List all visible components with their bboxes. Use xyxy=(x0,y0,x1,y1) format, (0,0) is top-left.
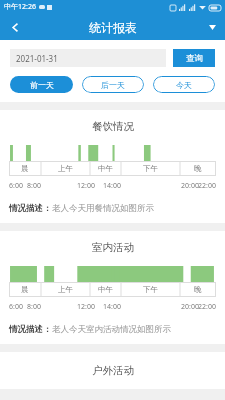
staticText: 22:00 xyxy=(198,181,216,191)
staticText: 6:00 xyxy=(9,302,23,312)
staticText: 20:00 xyxy=(181,302,199,312)
staticText: 中午 xyxy=(98,285,113,294)
staticText: 14:00 xyxy=(103,302,121,312)
staticText: 今天 xyxy=(176,80,192,90)
staticText: 晨 xyxy=(21,164,29,173)
button[interactable]: 查询 xyxy=(173,49,215,67)
button[interactable]: 返回 xyxy=(0,14,30,40)
staticText: 上午 xyxy=(58,164,73,173)
staticText: 老人今天用餐情况如图所示 xyxy=(52,203,154,214)
button[interactable]: 更多选项 xyxy=(199,14,225,40)
staticText: 14:00 xyxy=(103,181,121,191)
staticText: 查询 xyxy=(186,53,203,64)
staticText: 情况描述： xyxy=(9,324,52,335)
staticText: 8:00 xyxy=(27,302,41,312)
staticText: 下午 xyxy=(143,285,158,294)
staticText: 上午 xyxy=(58,285,73,294)
staticText: 室内活动 xyxy=(92,241,134,254)
staticText: 晨 xyxy=(21,285,29,294)
button[interactable]: 户外活动 xyxy=(0,352,225,389)
staticText: 老人今天室内活动情况如图所示 xyxy=(52,324,171,335)
staticText: 12:00 xyxy=(77,302,95,312)
staticText: 8:00 xyxy=(27,181,41,191)
button[interactable]: 后一天 xyxy=(82,76,144,93)
staticText: 下午 xyxy=(143,164,158,173)
staticText: 晚 xyxy=(194,285,202,294)
staticText: 12:00 xyxy=(77,181,95,191)
staticText: 后一天 xyxy=(101,80,125,90)
staticText: 中午 xyxy=(98,164,113,173)
staticText: 统计报表 xyxy=(89,20,137,35)
staticText: 情况描述： xyxy=(9,203,52,214)
staticText: 餐饮情况 xyxy=(92,120,134,133)
staticText: 6:00 xyxy=(9,181,23,191)
staticText: 前一天 xyxy=(30,80,54,90)
staticText: 晚 xyxy=(194,164,202,173)
staticText: 20:00 xyxy=(181,181,199,191)
button[interactable]: 前一天 xyxy=(10,76,73,93)
staticText: 2021-01-31 xyxy=(16,53,58,64)
staticText: 户外活动 xyxy=(92,364,134,377)
button[interactable]: 2021-01-31 xyxy=(10,49,166,67)
button[interactable]: 今天 xyxy=(153,76,215,93)
staticText: 中午12:26 xyxy=(4,2,36,12)
staticText: 22:00 xyxy=(198,302,216,312)
